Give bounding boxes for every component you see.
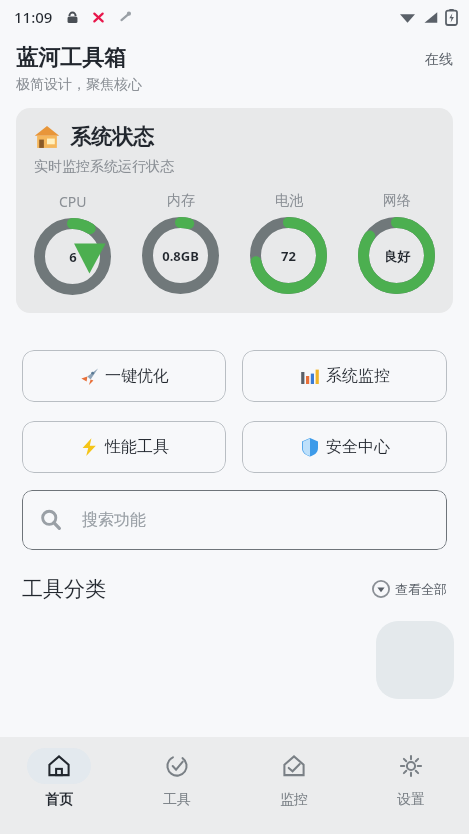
- staticText: 72: [281, 247, 296, 265]
- staticText: 6: [69, 248, 77, 266]
- staticText: 良好: [384, 248, 410, 264]
- staticText: 内存: [167, 192, 195, 210]
- button[interactable]: 搜索功能: [22, 490, 447, 550]
- button[interactable]: 性能工具: [22, 421, 226, 473]
- staticText: 网络: [383, 192, 411, 210]
- staticText: 查看全部: [395, 581, 447, 597]
- staticText: 11:09: [14, 7, 53, 27]
- staticText: 系统状态: [70, 124, 154, 150]
- staticText: 设置: [397, 791, 425, 809]
- button[interactable]: 首页: [0, 737, 118, 834]
- button[interactable]: 工具: [118, 737, 235, 834]
- staticText: 一键优化: [105, 366, 169, 386]
- button[interactable]: Quick action: [376, 621, 454, 699]
- staticText: 工具: [163, 791, 191, 809]
- button[interactable]: 系统监控: [242, 350, 447, 402]
- staticText: 0.8GB: [162, 247, 199, 265]
- button[interactable]: 监控: [235, 737, 352, 834]
- staticText: 蓝河工具箱: [16, 44, 126, 72]
- button[interactable]: 查看全部: [372, 580, 447, 598]
- staticText: 实时监控系统运行状态: [34, 158, 174, 176]
- staticText: 首页: [45, 791, 73, 809]
- staticText: 搜索功能: [82, 510, 146, 530]
- staticText: 系统监控: [326, 366, 390, 386]
- button[interactable]: 设置: [352, 737, 469, 834]
- button[interactable]: 在线: [425, 51, 453, 69]
- staticText: 安全中心: [326, 437, 390, 457]
- staticText: 工具分类: [22, 576, 106, 602]
- staticText: 电池: [275, 192, 303, 210]
- staticText: 监控: [280, 791, 308, 809]
- staticText: 极简设计，聚焦核心: [16, 76, 142, 94]
- staticText: 性能工具: [105, 437, 169, 457]
- staticText: CPU: [59, 192, 87, 211]
- button[interactable]: 安全中心: [242, 421, 447, 473]
- button[interactable]: 系统状态: [16, 108, 453, 313]
- button[interactable]: 一键优化: [22, 350, 226, 402]
